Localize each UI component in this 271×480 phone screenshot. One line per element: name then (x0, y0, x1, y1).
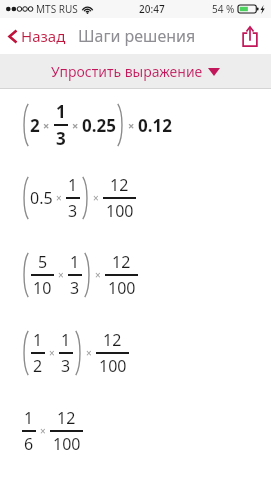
staticText: 6 (24, 433, 34, 455)
button[interactable]: 1 (0, 392, 271, 470)
staticText: × (40, 424, 46, 438)
staticText: 10 (33, 277, 52, 299)
staticText: × (72, 118, 79, 133)
staticText: 20:47 (139, 2, 165, 16)
button[interactable]: Share (234, 21, 265, 52)
staticText: 5 (38, 251, 48, 273)
staticText: Назад (21, 26, 66, 46)
staticText: × (93, 191, 99, 205)
staticText: 3 (68, 200, 78, 222)
staticText: 100 (99, 355, 127, 377)
staticText: × (43, 118, 50, 133)
staticText: 0.25 (82, 114, 116, 137)
staticText: 3 (70, 277, 80, 299)
staticText: × (56, 191, 62, 205)
staticText: 1 (24, 407, 34, 429)
staticText: 100 (106, 200, 134, 222)
staticText: Упростить выражение (51, 62, 203, 81)
staticText: 12 (57, 407, 76, 429)
button[interactable]: 1 (0, 314, 271, 392)
staticText: 2 (33, 355, 43, 377)
staticText: 0.5 (30, 187, 53, 209)
button[interactable]: 5 (0, 236, 271, 314)
staticText: × (86, 346, 92, 360)
staticText: 2 (30, 114, 40, 137)
staticText: 1 (33, 329, 43, 351)
staticText: × (95, 268, 101, 282)
staticText: 1 (56, 100, 66, 123)
staticText: 100 (53, 433, 81, 455)
staticText: 1 (68, 174, 78, 196)
staticText: 3 (56, 127, 66, 150)
staticText: × (49, 346, 55, 360)
button[interactable]: Назад (5, 22, 69, 50)
staticText: MTS RUS (36, 2, 78, 16)
staticText: × (58, 268, 64, 282)
staticText: Шаги решения (78, 25, 196, 47)
staticText: 12 (110, 174, 129, 196)
staticText: 12 (112, 251, 131, 273)
staticText: × (128, 118, 135, 133)
staticText: 100 (108, 277, 136, 299)
button[interactable]: 2 (0, 89, 271, 160)
button[interactable]: 0.5 (0, 160, 271, 236)
staticText: 0.12 (138, 114, 172, 137)
staticText: 3 (61, 355, 71, 377)
staticText: 1 (61, 329, 71, 351)
staticText: 1 (70, 251, 80, 273)
button[interactable]: Упростить выражение (0, 54, 271, 88)
staticText: 12 (103, 329, 122, 351)
staticText: 54 % (212, 2, 235, 16)
